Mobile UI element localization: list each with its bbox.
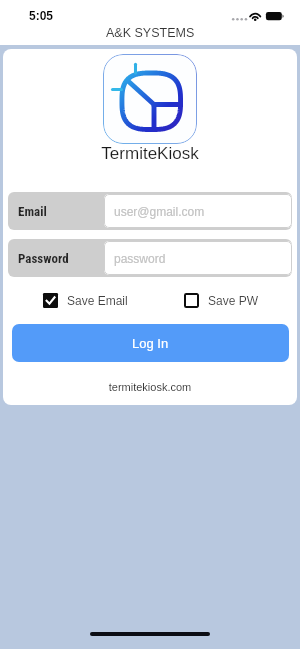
button[interactable]: Save PW [184,293,259,308]
staticText: Save Email [67,294,128,307]
staticText: password [114,252,166,265]
staticText: Save PW [208,294,259,307]
staticText: Email [18,204,47,219]
button[interactable]: Save Email [43,293,128,308]
staticText: 5:05 [29,9,54,22]
staticText: Password [18,251,69,266]
staticText: TermiteKiosk [3,144,297,163]
button[interactable]: Password [8,239,292,277]
staticText: termitekiosk.com [3,381,297,393]
staticText: user@gmail.com [114,205,205,218]
button[interactable]: Log In [12,324,289,362]
staticText: Log In [132,336,169,351]
button[interactable]: Email [8,192,292,230]
staticText: A&K SYSTEMS [106,26,195,40]
